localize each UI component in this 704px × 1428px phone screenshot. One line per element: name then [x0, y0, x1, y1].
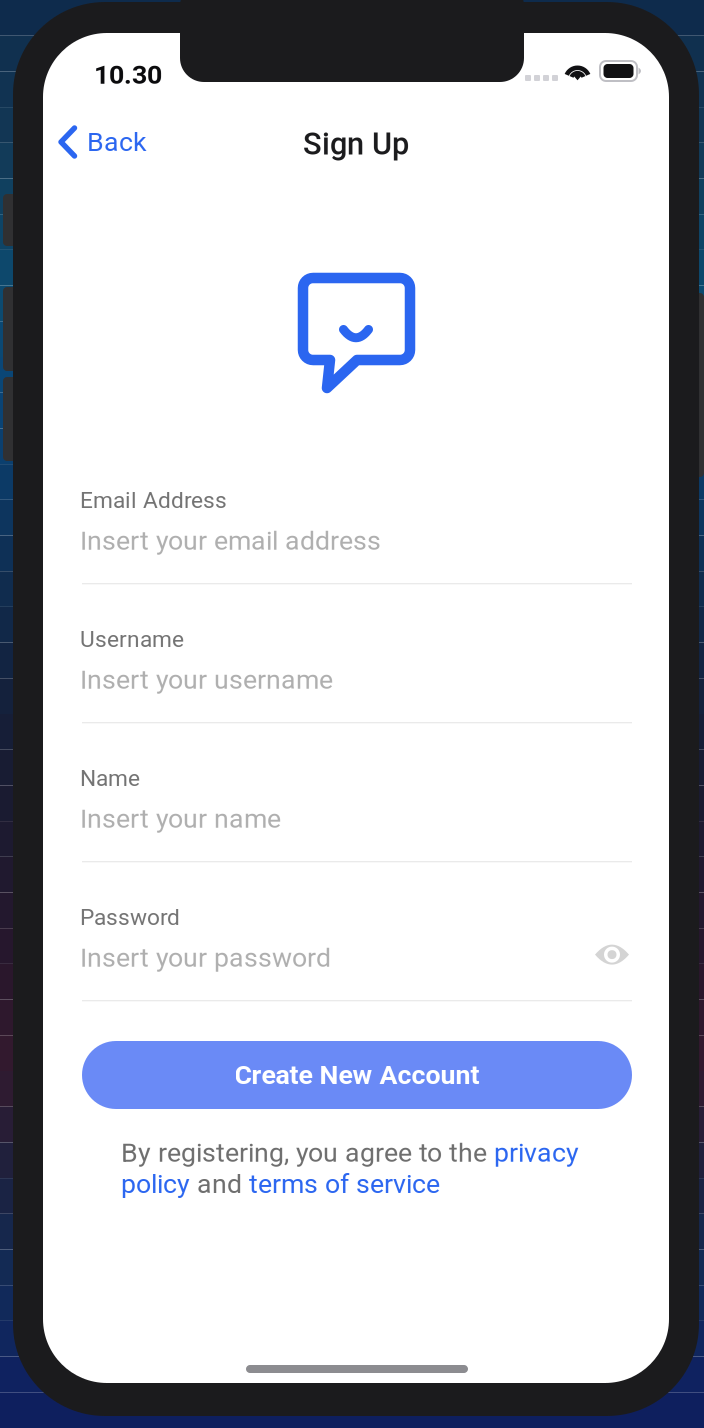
button[interactable]: terms of service: [249, 1168, 440, 1200]
staticText: Create New Account: [234, 1059, 479, 1091]
staticText: and: [190, 1168, 249, 1200]
button[interactable]: Create New Account: [82, 1041, 632, 1109]
button[interactable]: Name: [82, 772, 632, 872]
button[interactable]: policy: [121, 1168, 190, 1200]
staticText: Password: [80, 904, 180, 931]
button[interactable]: Password: [82, 911, 632, 1011]
staticText: Email Address: [80, 487, 227, 514]
staticText: Username: [80, 626, 184, 653]
button[interactable]: Back: [43, 116, 162, 168]
staticText: policy: [121, 1168, 190, 1200]
button[interactable]: Email Address: [82, 494, 632, 594]
staticText: Insert your name: [80, 803, 281, 834]
staticText: By registering, you agree to the: [121, 1137, 494, 1168]
staticText: Name: [80, 765, 140, 792]
staticText: terms of service: [249, 1168, 440, 1200]
button[interactable]: Username: [82, 633, 632, 733]
staticText: Insert your username: [80, 664, 333, 695]
staticText: Insert your password: [80, 942, 331, 973]
staticText: Sign Up: [303, 126, 409, 162]
staticText: privacy: [494, 1137, 579, 1168]
staticText: Back: [87, 126, 147, 158]
staticText: 10.30: [94, 59, 162, 90]
staticText: Insert your email address: [80, 525, 381, 556]
button[interactable]: privacy: [494, 1137, 579, 1168]
